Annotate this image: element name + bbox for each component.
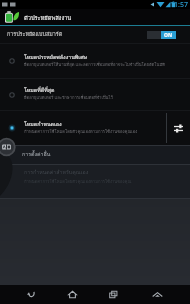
button[interactable]: โหมดกำหนดเอง — [0, 111, 190, 145]
button[interactable]: Quick settings — [141, 285, 173, 304]
staticText: การตั้งค่าอื่น — [22, 150, 51, 158]
staticText: การประหยัดแบบสมาร์ต — [7, 30, 63, 39]
staticText: ตัวประหยัดพลังงาน — [24, 13, 72, 22]
staticText: โหมดประหยัดพลังงานพิเศษ — [24, 53, 88, 61]
button[interactable]: Smart saving toggle, on — [147, 31, 176, 39]
staticText: ON — [164, 32, 173, 39]
button[interactable]: โหมดประหยัดพลังงานพิเศษ — [0, 44, 190, 78]
button[interactable]: โหมดที่ดีที่สุด — [0, 79, 190, 110]
staticText: การกำหนดค่าสำหรับคุณเอง — [24, 168, 89, 176]
staticText: ยืดอายุแบตเตอรี่ให้นานที่สุด และลดการเชื… — [24, 61, 165, 68]
button[interactable]: Custom mode settings — [167, 111, 190, 145]
staticText: โหมดกำหนดเอง — [24, 120, 62, 128]
staticText: กำหนดค่าการใช้โหมดโดยตัวคุณเองตามการใช้ง… — [24, 178, 132, 185]
staticText: ยืดอายุแบตเตอรี่ และรักษาการเชื่อมต่อที่… — [24, 94, 113, 101]
staticText: โหมดที่ดีที่สุด — [24, 86, 55, 94]
button[interactable]: Back — [15, 285, 47, 304]
button[interactable]: Home — [56, 285, 88, 304]
staticText: 11:57 — [170, 0, 188, 9]
staticText: กำหนดค่าการใช้โหมดโดยตัวคุณเองตามการใช้ง… — [24, 128, 138, 135]
button[interactable]: Recent apps — [97, 285, 129, 304]
